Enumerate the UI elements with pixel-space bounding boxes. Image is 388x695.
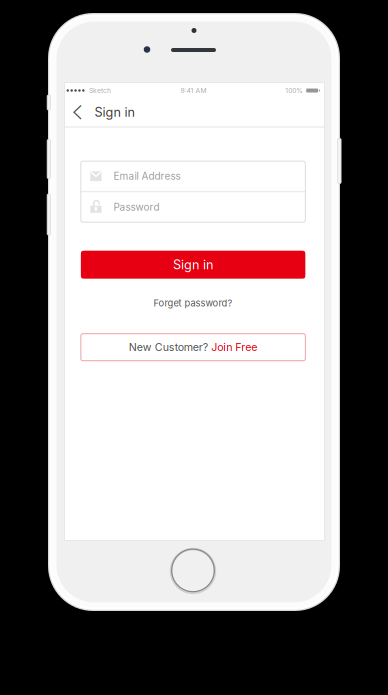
- staticText: Password: [113, 201, 159, 213]
- button[interactable]: New Customer?: [81, 334, 305, 361]
- button[interactable]: Back: [65, 98, 94, 126]
- staticText: Sketch: [89, 86, 111, 95]
- staticText: 100%: [285, 86, 303, 95]
- staticText: New Customer?: [129, 341, 208, 354]
- staticText: 9:41 AM: [180, 86, 206, 95]
- button[interactable]: Sign in: [81, 251, 305, 279]
- staticText: Join Free: [211, 341, 257, 354]
- staticText: Email Address: [113, 170, 180, 182]
- staticText: Forget password?: [154, 298, 233, 309]
- button[interactable]: Forget password?: [81, 291, 305, 316]
- staticText: Sign in: [94, 105, 134, 120]
- staticText: Sign in: [173, 257, 213, 272]
